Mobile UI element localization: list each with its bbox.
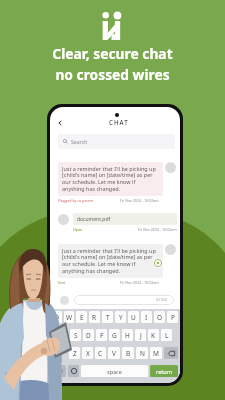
- button[interactable]: document.pdf: [77, 213, 173, 225]
- button[interactable]: P: [167, 311, 178, 323]
- staticText: Q: [54, 313, 60, 322]
- staticText: U: [131, 313, 136, 322]
- staticText: return: [156, 368, 173, 375]
- staticText: B: [126, 349, 131, 358]
- button[interactable]: return: [150, 365, 178, 377]
- staticText: space: [107, 368, 122, 375]
- staticText: O: [157, 313, 163, 322]
- staticText: W: [66, 313, 73, 322]
- staticText: CHAT: [109, 118, 129, 126]
- staticText: Z: [73, 349, 77, 358]
- button[interactable]: V: [108, 347, 120, 359]
- button[interactable]: Q: [52, 311, 62, 323]
- staticText: G: [112, 331, 117, 340]
- button[interactable]: Z: [69, 347, 80, 359]
- button[interactable]: D: [83, 329, 94, 341]
- button[interactable]: X: [82, 347, 93, 359]
- button[interactable]: N: [136, 347, 148, 359]
- staticText: 0/160: [156, 297, 168, 303]
- button[interactable]: I: [141, 311, 152, 323]
- staticText: document.pdf: [77, 216, 111, 223]
- staticText: M: [153, 349, 159, 358]
- button[interactable]: Back: [55, 118, 65, 128]
- staticText: Open: [73, 227, 83, 232]
- button[interactable]: M: [150, 347, 162, 359]
- staticText: X: [86, 349, 90, 358]
- staticText: Sent: [58, 280, 66, 285]
- staticText: R: [92, 313, 97, 322]
- staticText: Y: [119, 313, 123, 322]
- button[interactable]: 123: [52, 365, 66, 377]
- staticText: Fri Nov 2024 - 10:02am: [120, 198, 159, 203]
- staticText: C: [98, 349, 103, 358]
- staticText: E: [80, 313, 84, 322]
- button[interactable]: K: [148, 329, 159, 341]
- button[interactable]: J: [135, 329, 146, 341]
- staticText: L: [165, 331, 169, 340]
- button[interactable]: Y: [115, 311, 126, 323]
- staticText: no crossed wires: [55, 65, 170, 84]
- staticText: D: [86, 331, 91, 340]
- button[interactable]: Search: [58, 134, 175, 149]
- button[interactable]: A: [58, 329, 68, 341]
- button[interactable]: space: [81, 365, 148, 377]
- button[interactable]: B: [122, 347, 134, 359]
- staticText: T: [106, 313, 110, 322]
- staticText: F: [100, 331, 104, 340]
- button[interactable]: W: [64, 311, 74, 323]
- button[interactable]: R: [89, 311, 100, 323]
- button[interactable]: H: [122, 329, 133, 341]
- button[interactable]: G: [109, 329, 120, 341]
- button[interactable]: Backspace: [164, 347, 178, 359]
- button[interactable]: T: [102, 311, 113, 323]
- button[interactable]: F: [96, 329, 107, 341]
- button[interactable]: S: [70, 329, 81, 341]
- staticText: Clear, secure chat: [52, 44, 173, 63]
- button[interactable]: E: [76, 311, 87, 323]
- button[interactable]: O: [154, 311, 165, 323]
- staticText: N: [140, 349, 145, 358]
- button[interactable]: C: [95, 347, 106, 359]
- staticText: Fri Nov 2024 - 10:02am: [120, 280, 159, 285]
- button[interactable]: 0/160: [74, 295, 174, 305]
- staticText: K: [151, 331, 156, 340]
- staticText: 123: [55, 368, 63, 374]
- staticText: I: [145, 313, 148, 322]
- staticText: Flagged by co-parent: [58, 198, 94, 203]
- staticText: Just a reminder that I'll be picking up …: [62, 247, 159, 275]
- staticText: H: [125, 331, 130, 340]
- staticText: Search: [71, 138, 88, 145]
- staticText: P: [171, 313, 175, 322]
- button[interactable]: U: [128, 311, 139, 323]
- button[interactable]: Emoji: [68, 365, 79, 377]
- staticText: V: [112, 349, 116, 358]
- staticText: S: [74, 331, 78, 340]
- button[interactable]: L: [161, 329, 172, 341]
- staticText: J: [140, 331, 142, 340]
- staticText: Fri Nov 2024 - 10:02am: [138, 227, 177, 232]
- staticText: Just a reminder that I'll be picking up …: [62, 165, 159, 193]
